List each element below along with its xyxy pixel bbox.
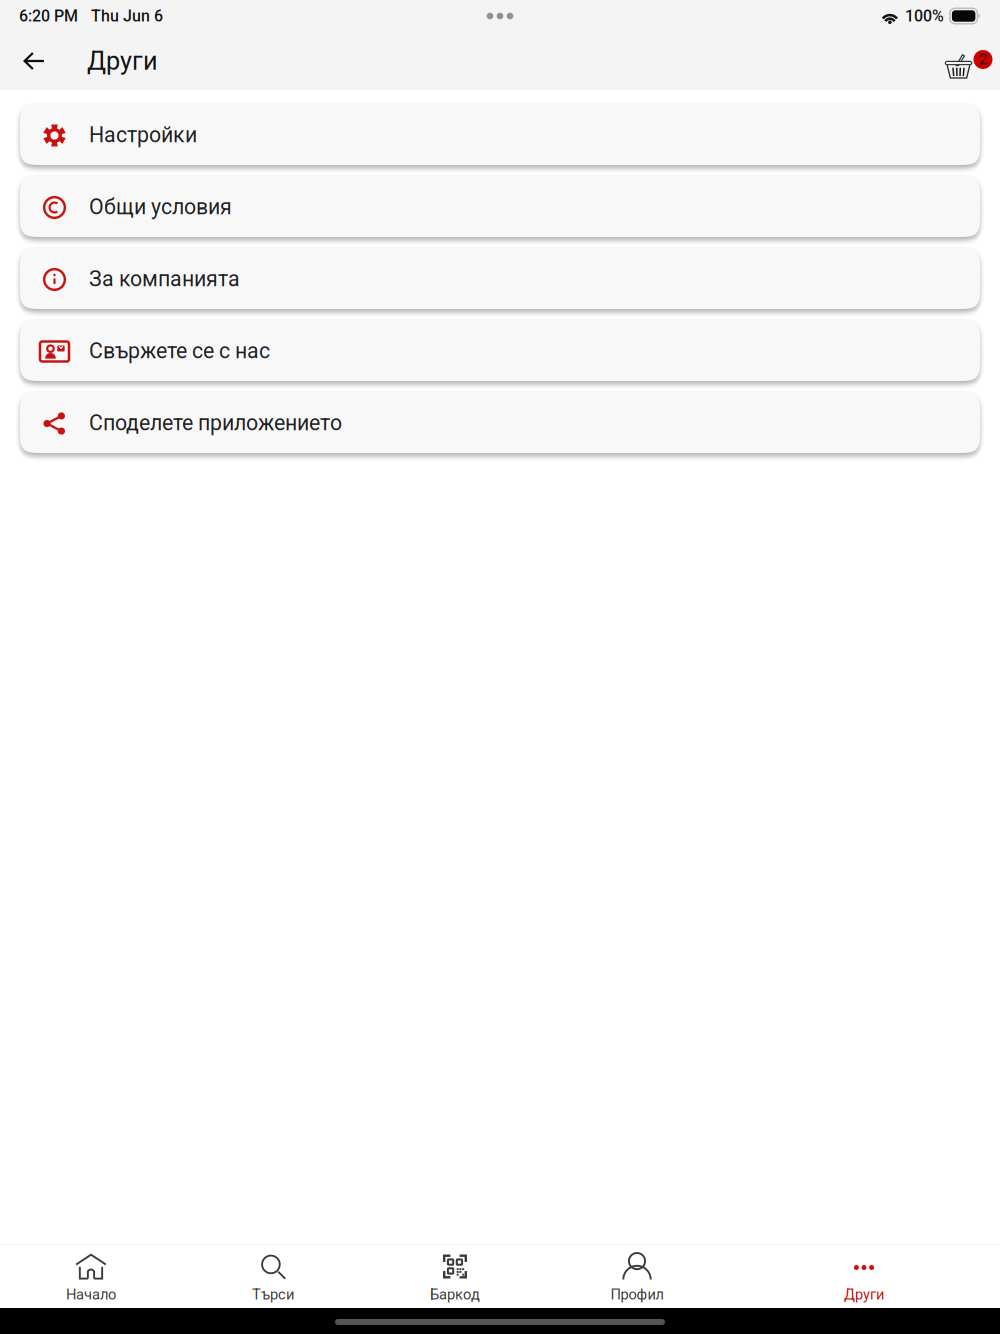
button[interactable]: Общи условия [20, 175, 980, 237]
staticText: Други [87, 46, 158, 76]
button[interactable]: Други [728, 1245, 1000, 1308]
staticText: 2 [979, 51, 987, 68]
staticText: Thu Jun 6 [91, 7, 163, 25]
button[interactable]: Back [12, 35, 56, 87]
staticText: За компанията [89, 266, 240, 291]
staticText: Свържете се с нас [89, 338, 270, 363]
staticText: 100% [905, 7, 944, 25]
staticText: 6:20 PM [19, 7, 78, 25]
staticText: Други [844, 1286, 884, 1303]
button[interactable]: Профил [546, 1245, 728, 1308]
staticText: Споделете приложението [89, 410, 342, 435]
button[interactable]: Свържете се с нас [20, 319, 980, 381]
button[interactable]: Споделете приложението [20, 391, 980, 453]
button[interactable]: Търси [182, 1245, 364, 1308]
staticText: Баркод [430, 1286, 480, 1303]
button[interactable]: Cart [930, 35, 992, 87]
button[interactable]: За компанията [20, 247, 980, 309]
staticText: Търси [252, 1286, 294, 1303]
button[interactable]: Баркод [364, 1245, 546, 1308]
staticText: Профил [610, 1286, 663, 1303]
button[interactable]: Начало [0, 1245, 182, 1308]
staticText: Настройки [89, 122, 197, 147]
staticText: Общи условия [89, 194, 232, 219]
staticText: Начало [66, 1286, 116, 1303]
button[interactable]: Настройки [20, 103, 980, 165]
